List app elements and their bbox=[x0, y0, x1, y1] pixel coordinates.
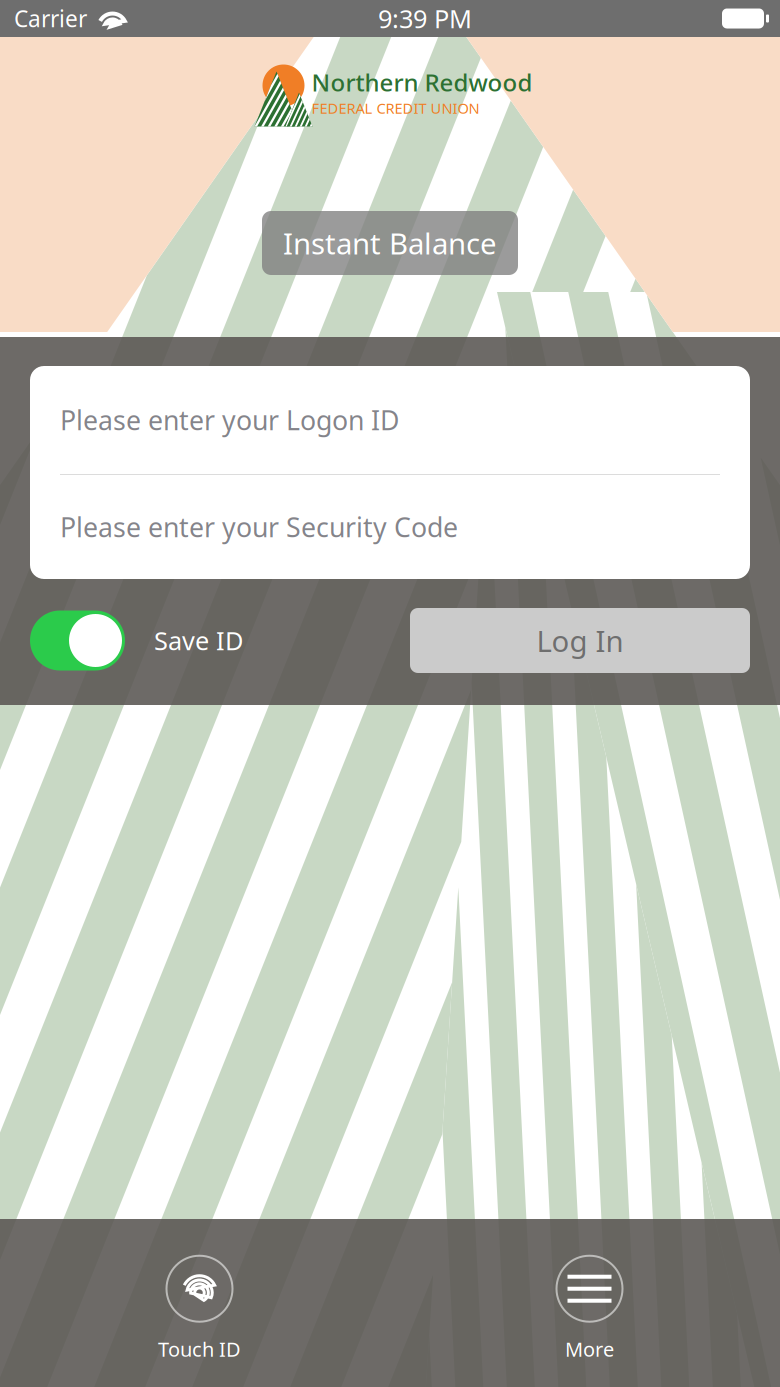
button[interactable]: Log In bbox=[410, 608, 750, 673]
staticText: Log In bbox=[536, 621, 623, 660]
staticText: Northern Redwood bbox=[311, 66, 532, 98]
staticText: Touch ID bbox=[158, 1336, 241, 1362]
staticText: Carrier bbox=[14, 3, 87, 33]
button[interactable]: Instant Balance bbox=[262, 211, 518, 275]
staticText: Instant Balance bbox=[283, 223, 497, 262]
button[interactable]: Save ID bbox=[30, 610, 243, 670]
staticText: More bbox=[565, 1336, 614, 1362]
staticText: FEDERAL CREDIT UNION bbox=[311, 98, 479, 118]
button[interactable]: More bbox=[399, 1244, 780, 1362]
button[interactable]: Please enter your Logon ID bbox=[30, 366, 750, 474]
staticText: Please enter your Logon ID bbox=[60, 402, 399, 438]
staticText: Please enter your Security Code bbox=[60, 509, 458, 545]
staticText: 9:39 PM bbox=[378, 2, 472, 35]
button[interactable]: Please enter your Security Code bbox=[30, 475, 750, 579]
staticText: Save ID bbox=[154, 624, 243, 657]
button[interactable]: Touch ID bbox=[0, 1244, 399, 1362]
